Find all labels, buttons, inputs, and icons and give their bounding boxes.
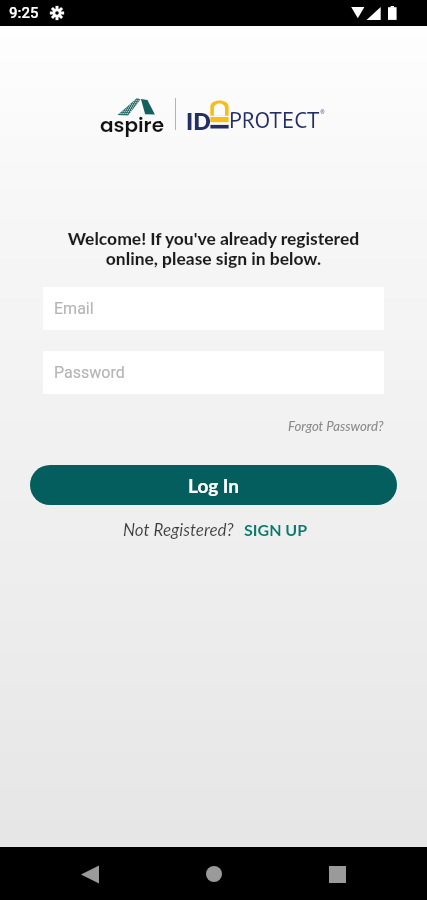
staticText: Password xyxy=(54,363,125,382)
staticText: 9:25 xyxy=(9,4,39,22)
button[interactable]: Log In xyxy=(30,465,397,505)
staticText: SIGN UP xyxy=(244,520,308,539)
button[interactable]: SIGN UP xyxy=(244,520,308,539)
button[interactable]: Home xyxy=(193,853,235,895)
button[interactable]: Recent apps xyxy=(316,853,358,895)
button[interactable]: Password xyxy=(43,351,384,394)
staticText: Log In xyxy=(188,474,240,497)
button[interactable]: Email xyxy=(43,287,384,330)
button[interactable]: Forgot Password? xyxy=(286,416,386,436)
button[interactable]: Back xyxy=(69,853,111,895)
staticText: Welcome! If you've already registered on… xyxy=(20,228,407,269)
staticText: ID xyxy=(186,107,211,135)
staticText: Not Registered? xyxy=(123,519,234,539)
staticText: ® xyxy=(320,108,325,117)
staticText: aspire xyxy=(100,111,164,139)
staticText: PROTECT xyxy=(229,105,320,135)
staticText: Email xyxy=(54,299,94,318)
